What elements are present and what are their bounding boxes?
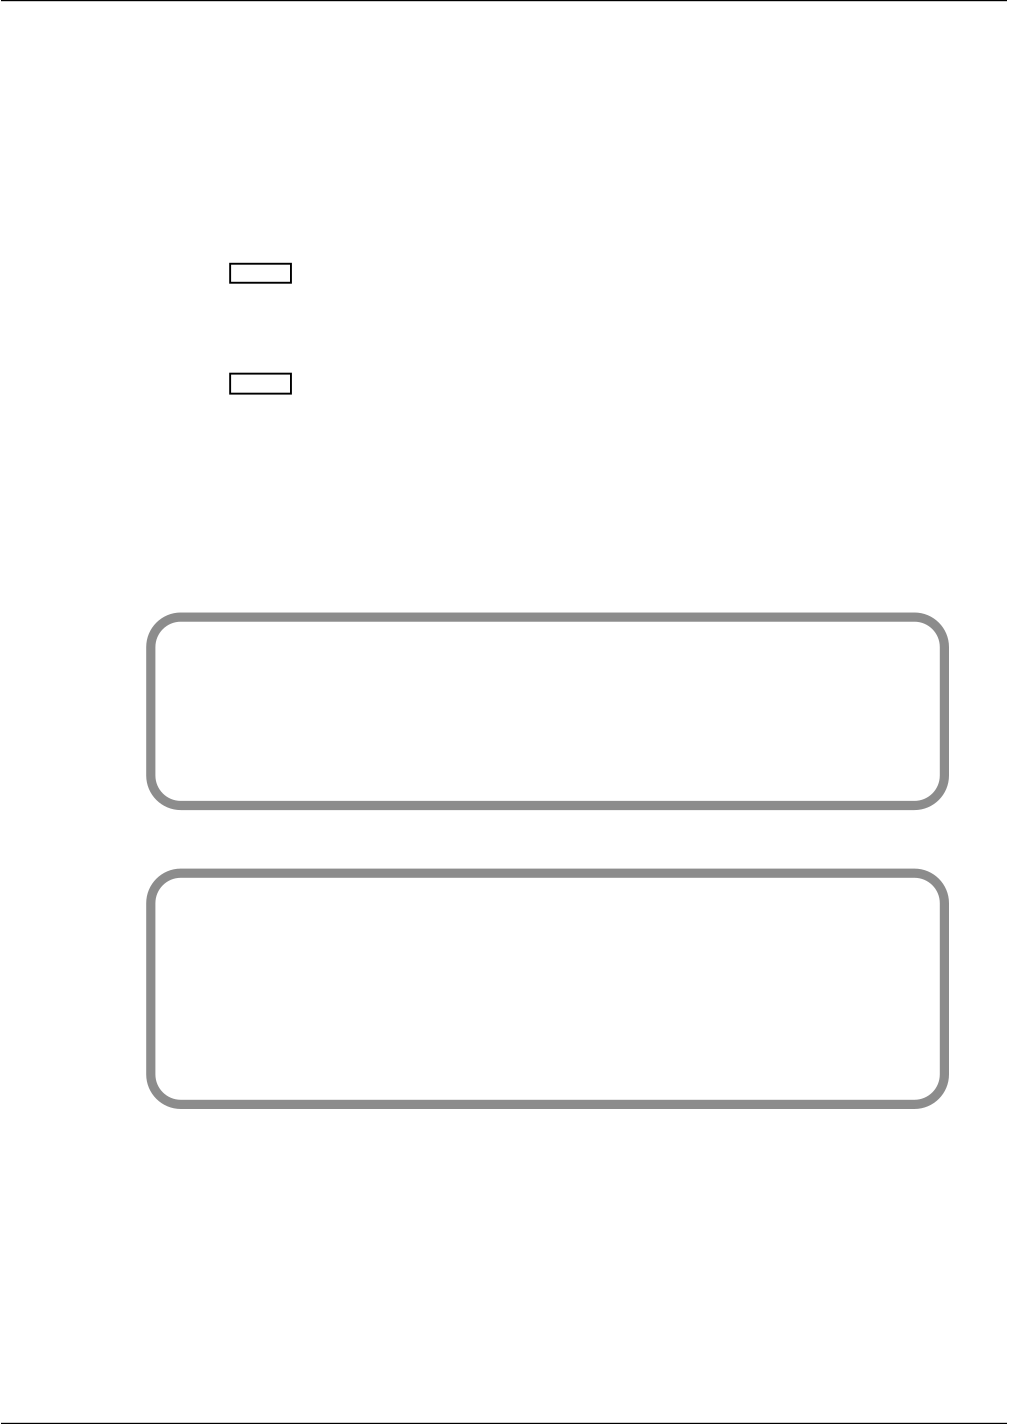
button[interactable]: Second field bbox=[229, 373, 292, 395]
button[interactable]: First card bbox=[146, 612, 949, 810]
button[interactable]: First field bbox=[229, 263, 292, 284]
button[interactable]: Second card bbox=[146, 869, 949, 1109]
